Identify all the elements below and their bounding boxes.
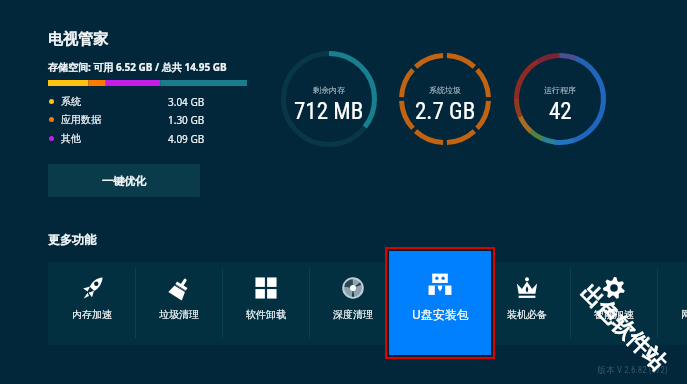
staticText: U盘安装包 [412,306,469,322]
staticText: 3.04 GB [168,95,205,109]
staticText: 深度清理 [333,308,373,321]
staticText: 智能加速 [594,308,634,321]
staticText: 应用数据 [61,113,101,126]
staticText: 更多功能 [48,232,96,247]
button[interactable]: 垃圾清理 [135,262,222,345]
button[interactable]: 软件卸载 [222,262,309,345]
staticText: 运行程序 [544,85,576,95]
staticText: 垃圾清理 [159,308,199,321]
staticText: 出色软件站 [574,279,672,377]
staticText: 装机必备 [507,308,547,321]
staticText: 存储空间: 可用 6.52 GB / 总共 14.95 GB [48,60,227,74]
staticText: 内存加速 [72,308,112,321]
staticText: 系统 [61,95,81,108]
staticText: 剩余内存 [313,85,345,95]
button[interactable]: 装机必备 [483,262,570,345]
button[interactable]: 应用数据 [48,113,208,127]
staticText: 系统垃圾 [429,85,461,95]
button[interactable]: 内存加速 [48,262,135,345]
staticText: 712 MB [294,98,364,125]
button[interactable]: U盘安装包 [389,251,491,355]
staticText: 版本 V 2.6.82 (572) [597,364,668,375]
staticText: 电视管家 [48,30,108,49]
staticText: 2.7 GB [415,98,476,125]
staticText: 1.30 GB [168,113,205,127]
staticText: 4.09 GB [168,132,205,146]
button[interactable]: 其他 [48,132,208,146]
staticText: 其他 [61,132,81,145]
button[interactable]: 智能加速 [570,262,657,345]
staticText: 42 [549,98,572,125]
staticText: 网络测速 [681,308,687,321]
button[interactable]: 网络测速 [657,262,687,345]
staticText: 一键优化 [102,174,146,188]
button[interactable]: 深度清理 [309,262,396,345]
staticText: 软件卸载 [246,308,286,321]
button[interactable]: 一键优化 [48,164,200,197]
button[interactable]: 系统 [48,95,208,109]
